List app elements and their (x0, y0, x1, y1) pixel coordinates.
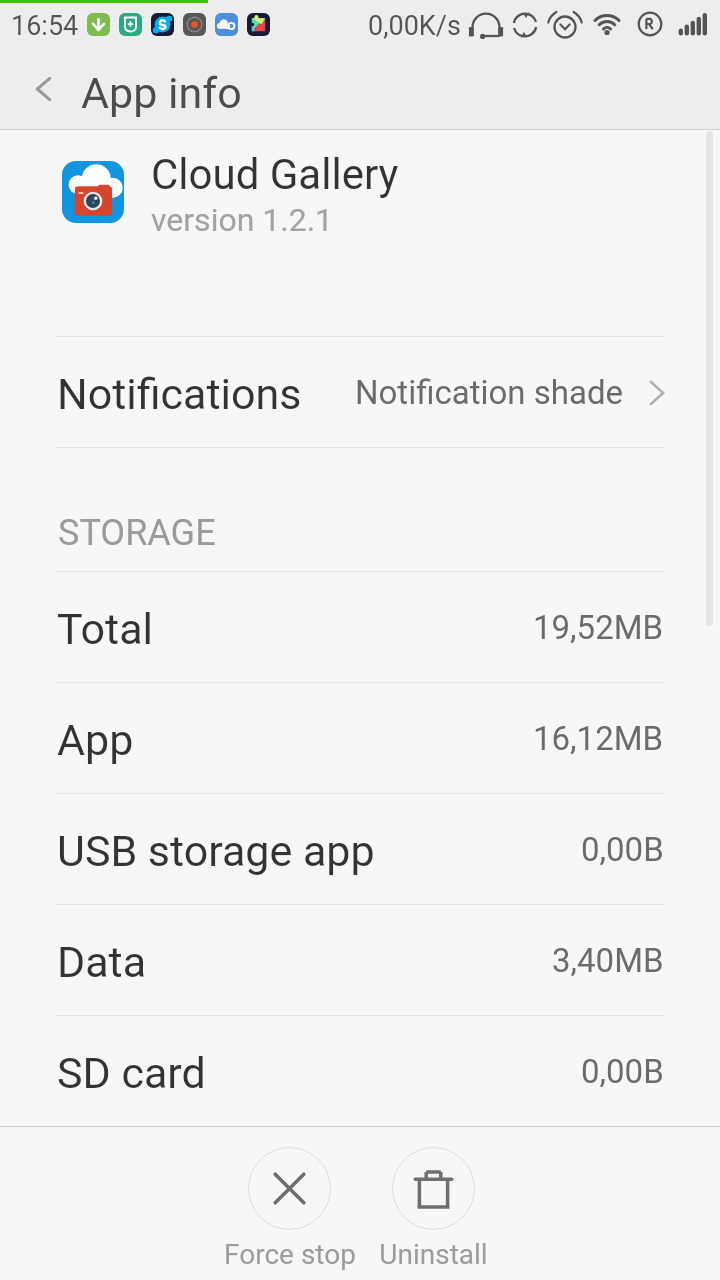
button[interactable]: Notifications (0, 337, 720, 447)
staticText: 16,12MB (533, 719, 664, 758)
staticText: Data (57, 937, 147, 987)
staticText: App info (81, 68, 242, 118)
staticText: Cloud Gallery (151, 150, 399, 199)
button[interactable]: App (0, 683, 720, 793)
staticText: 19,52MB (533, 608, 664, 647)
button[interactable]: Data (0, 905, 720, 1015)
staticText: version 1.2.1 (151, 201, 334, 239)
staticText: Notification shade (355, 373, 624, 412)
staticText: App (57, 715, 134, 765)
button[interactable]: Uninstall (351, 1147, 516, 1271)
staticText: Total (57, 604, 154, 654)
button[interactable]: Total (0, 572, 720, 682)
button[interactable]: Force stop (207, 1147, 372, 1271)
button[interactable]: USB storage app (0, 794, 720, 904)
staticText: STORAGE (58, 512, 216, 554)
button[interactable]: Back (19, 69, 67, 117)
staticText: Uninstall (379, 1238, 488, 1271)
staticText: 3,40MB (552, 941, 664, 980)
staticText: Notifications (57, 369, 302, 419)
staticText: 0,00B (581, 1052, 664, 1091)
staticText: 0,00K/s (368, 10, 461, 42)
staticText: 16:54 (11, 10, 79, 42)
staticText: SD card (57, 1048, 206, 1098)
button[interactable]: SD card (0, 1016, 720, 1126)
staticText: Force stop (224, 1238, 356, 1271)
staticText: 0,00B (581, 830, 664, 869)
staticText: USB storage app (57, 826, 375, 876)
